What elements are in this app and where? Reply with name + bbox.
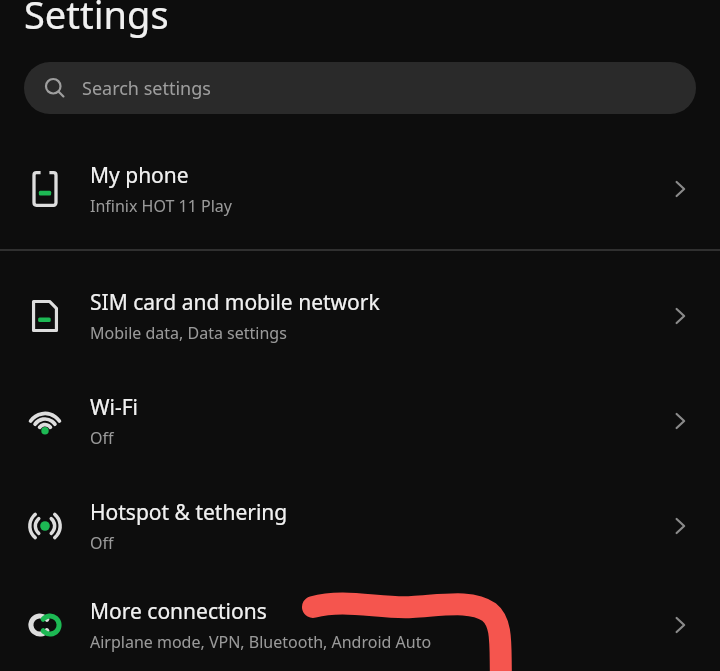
staticText: Settings [24, 0, 169, 40]
staticText: SIM card and mobile network [90, 288, 380, 317]
staticText: Off [90, 427, 114, 449]
staticText: Off [90, 532, 114, 554]
button[interactable]: Search settings [24, 62, 696, 114]
button[interactable]: Hotspot & tethering [0, 473, 720, 578]
staticText: Search settings [82, 76, 211, 101]
staticText: More connections [90, 597, 267, 626]
staticText: My phone [90, 161, 189, 190]
button[interactable]: My phone [0, 136, 720, 241]
staticText: Infinix HOT 11 Play [90, 195, 232, 217]
staticText: Mobile data, Data settings [90, 322, 287, 344]
button[interactable]: Wi-Fi [0, 368, 720, 473]
staticText: Wi-Fi [90, 393, 139, 422]
button[interactable]: SIM card and mobile network [0, 263, 720, 368]
staticText: Airplane mode, VPN, Bluetooth, Android A… [90, 631, 432, 653]
button[interactable]: More connections [0, 578, 720, 671]
staticText: Hotspot & tethering [90, 498, 288, 527]
